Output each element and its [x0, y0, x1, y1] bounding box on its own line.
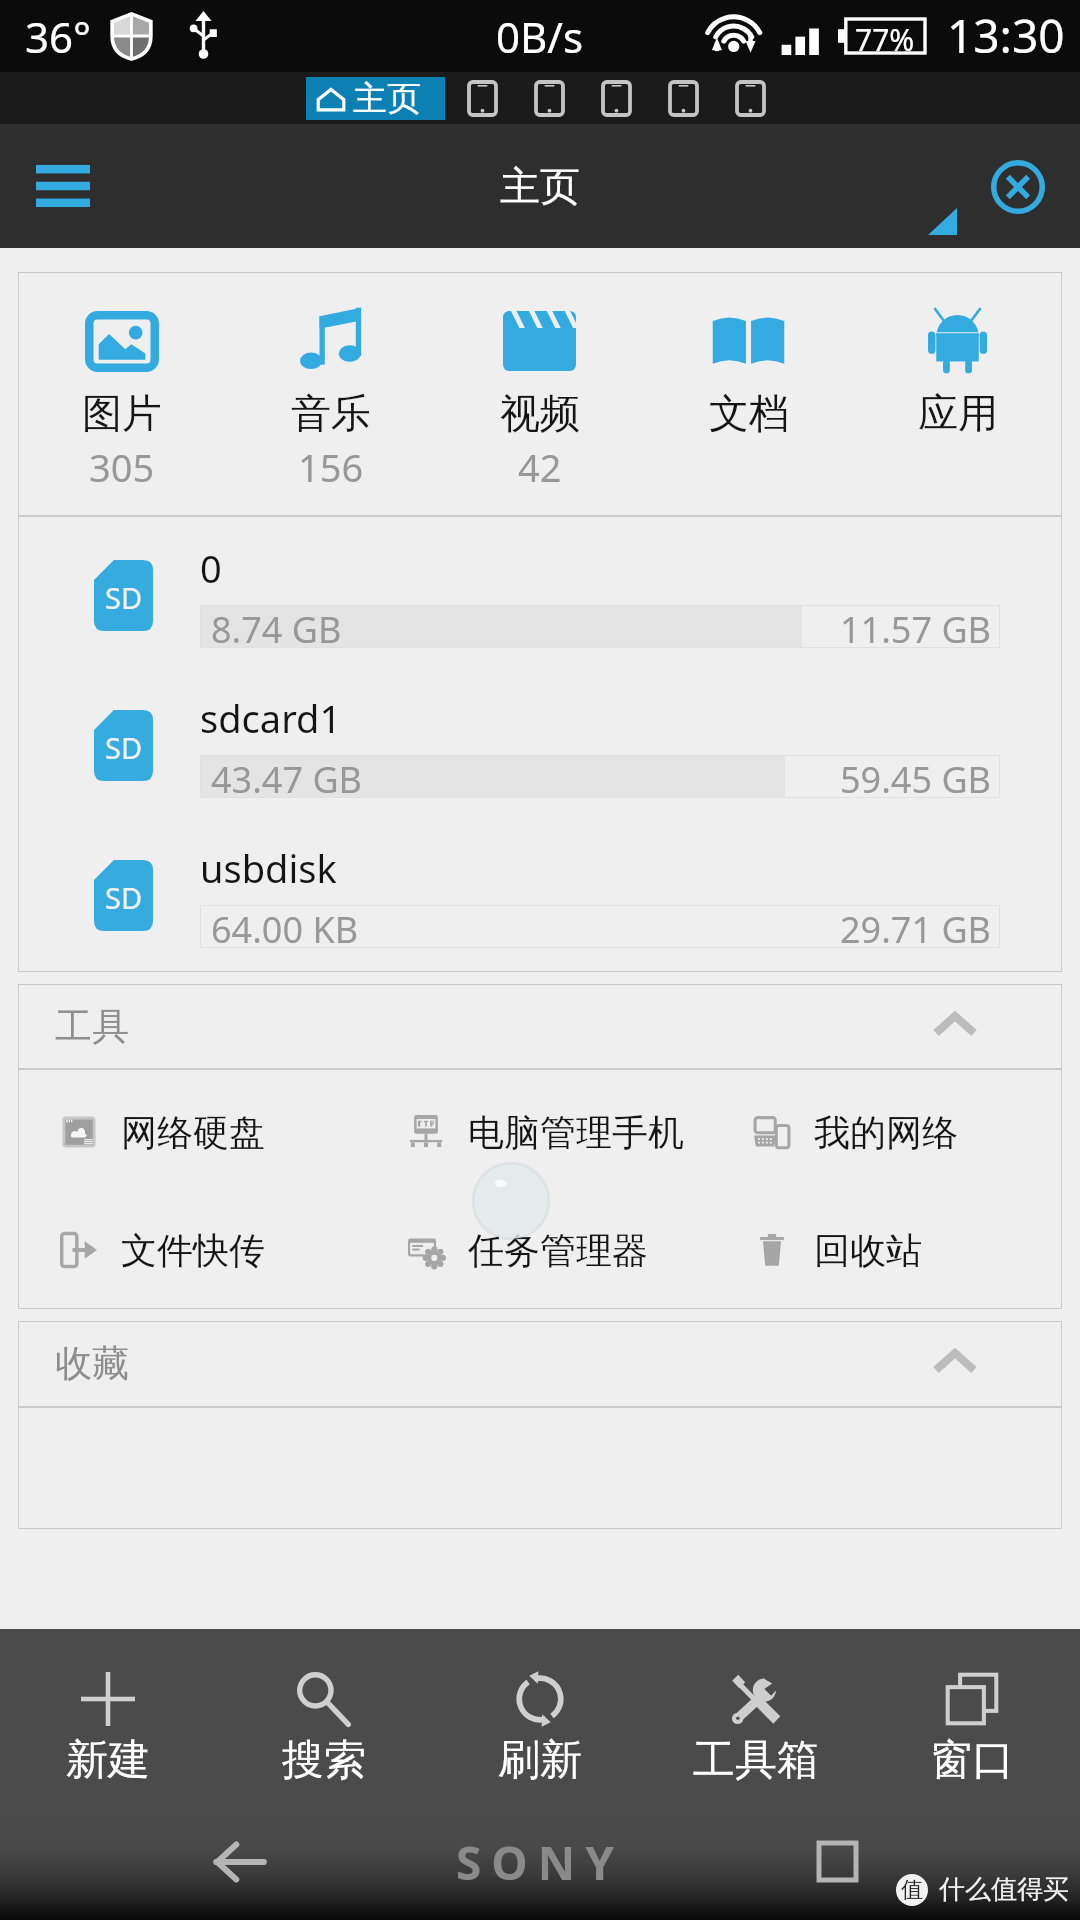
staticText: 文件快传	[121, 1228, 265, 1273]
staticText: 64.00 KB	[211, 905, 359, 948]
staticText: 工具箱	[693, 1734, 819, 1787]
button[interactable]: 回收站	[711, 1191, 1062, 1309]
button[interactable]: Window tab	[536, 82, 563, 115]
button[interactable]: SD	[18, 820, 1062, 970]
button[interactable]: Window tab	[670, 82, 697, 115]
staticText: 8.74 GB	[211, 605, 342, 648]
staticText: 窗口	[930, 1734, 1014, 1787]
staticText: 77%	[855, 19, 915, 53]
button[interactable]: 文档	[644, 272, 853, 515]
staticText: 305	[89, 441, 155, 493]
button[interactable]: 新建	[0, 1629, 216, 1804]
staticText: 43.47 GB	[211, 755, 362, 798]
staticText: sdcard1	[200, 692, 342, 744]
staticText: 网络硬盘	[121, 1110, 265, 1155]
button[interactable]: SD	[18, 670, 1062, 820]
staticText: 我的网络	[814, 1110, 958, 1155]
staticText: 36°	[25, 8, 92, 65]
staticText: 13:30	[947, 4, 1065, 67]
staticText: 回收站	[814, 1228, 922, 1273]
staticText: 11.57 GB	[840, 605, 991, 648]
button[interactable]: 文件快传	[18, 1191, 365, 1309]
staticText: SONY	[456, 1831, 624, 1894]
button[interactable]: Close	[991, 160, 1045, 214]
staticText: 主页	[353, 77, 421, 120]
staticText: 0	[200, 542, 222, 594]
button[interactable]: 窗口	[864, 1629, 1080, 1804]
button[interactable]: 搜索	[216, 1629, 432, 1804]
staticText: 刷新	[498, 1734, 582, 1787]
staticText: SD	[105, 878, 143, 917]
button[interactable]: 工具	[18, 984, 1062, 1068]
staticText: 文档	[709, 388, 789, 438]
button[interactable]: 电脑管理手机	[365, 1073, 711, 1191]
button[interactable]: Menu	[36, 165, 90, 207]
staticText: 工具	[55, 1003, 129, 1050]
staticText: 主页	[500, 161, 580, 211]
staticText: 42	[518, 441, 562, 493]
staticText: SD	[105, 728, 143, 767]
staticText: 收藏	[55, 1340, 129, 1387]
staticText: usbdisk	[200, 842, 337, 894]
button[interactable]: 我的网络	[711, 1073, 1062, 1191]
button[interactable]: Window tab	[469, 82, 496, 115]
staticText: SD	[105, 578, 143, 617]
staticText: 音乐	[291, 388, 371, 438]
staticText: 图片	[82, 388, 162, 438]
staticText: 应用	[918, 388, 998, 438]
button[interactable]: SD	[18, 520, 1062, 670]
staticText: 值	[901, 1876, 923, 1904]
button[interactable]: 图片	[18, 272, 226, 515]
button[interactable]: Window tab	[603, 82, 630, 115]
button[interactable]: 音乐	[226, 272, 435, 515]
button[interactable]: 收藏	[18, 1321, 1062, 1406]
staticText: 0B/s	[496, 8, 584, 65]
button[interactable]: 主页	[306, 77, 445, 120]
button[interactable]: 任务管理器	[365, 1191, 711, 1309]
staticText: 视频	[500, 388, 580, 438]
staticText: 新建	[66, 1734, 150, 1787]
staticText: 电脑管理手机	[468, 1110, 684, 1155]
button[interactable]: Window tab	[737, 82, 764, 115]
button[interactable]: 刷新	[432, 1629, 648, 1804]
button[interactable]: 视频	[435, 272, 644, 515]
button[interactable]: Back	[213, 1839, 266, 1885]
staticText: 29.71 GB	[840, 905, 991, 948]
button[interactable]: 网络硬盘	[18, 1073, 365, 1191]
staticText: 什么值得买	[939, 1873, 1069, 1906]
staticText: 59.45 GB	[840, 755, 991, 798]
staticText: 156	[298, 441, 364, 493]
button[interactable]: 工具箱	[648, 1629, 864, 1804]
button[interactable]: 应用	[853, 272, 1062, 515]
staticText: 搜索	[282, 1734, 366, 1787]
button[interactable]: Recent apps	[819, 1843, 856, 1880]
staticText: 任务管理器	[468, 1228, 648, 1273]
